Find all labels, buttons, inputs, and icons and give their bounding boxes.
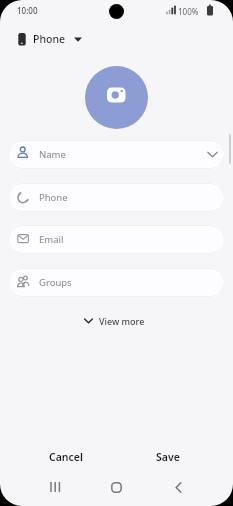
staticText: 10:00 — [17, 5, 38, 16]
staticText: Phone — [39, 191, 68, 204]
button[interactable]: Phone — [8, 183, 225, 212]
staticText: Groups — [39, 276, 72, 289]
staticText: Cancel — [49, 450, 83, 464]
button[interactable]: Email — [8, 225, 225, 254]
staticText: Email — [39, 233, 64, 246]
button[interactable] — [101, 474, 131, 500]
button[interactable] — [85, 66, 148, 129]
button[interactable] — [163, 474, 193, 500]
button[interactable] — [40, 474, 70, 500]
button[interactable]: Cancel — [26, 444, 106, 470]
button[interactable]: Groups — [8, 268, 225, 297]
staticText: 100% — [178, 6, 199, 17]
button[interactable]: Name — [8, 140, 225, 169]
staticText: Phone — [33, 32, 66, 46]
staticText: View more — [99, 315, 145, 327]
button[interactable]: Phone — [12, 29, 88, 49]
button[interactable]: Save — [128, 444, 208, 470]
staticText: Save — [156, 450, 180, 464]
button[interactable]: View more — [78, 310, 151, 332]
staticText: Name — [39, 148, 66, 161]
